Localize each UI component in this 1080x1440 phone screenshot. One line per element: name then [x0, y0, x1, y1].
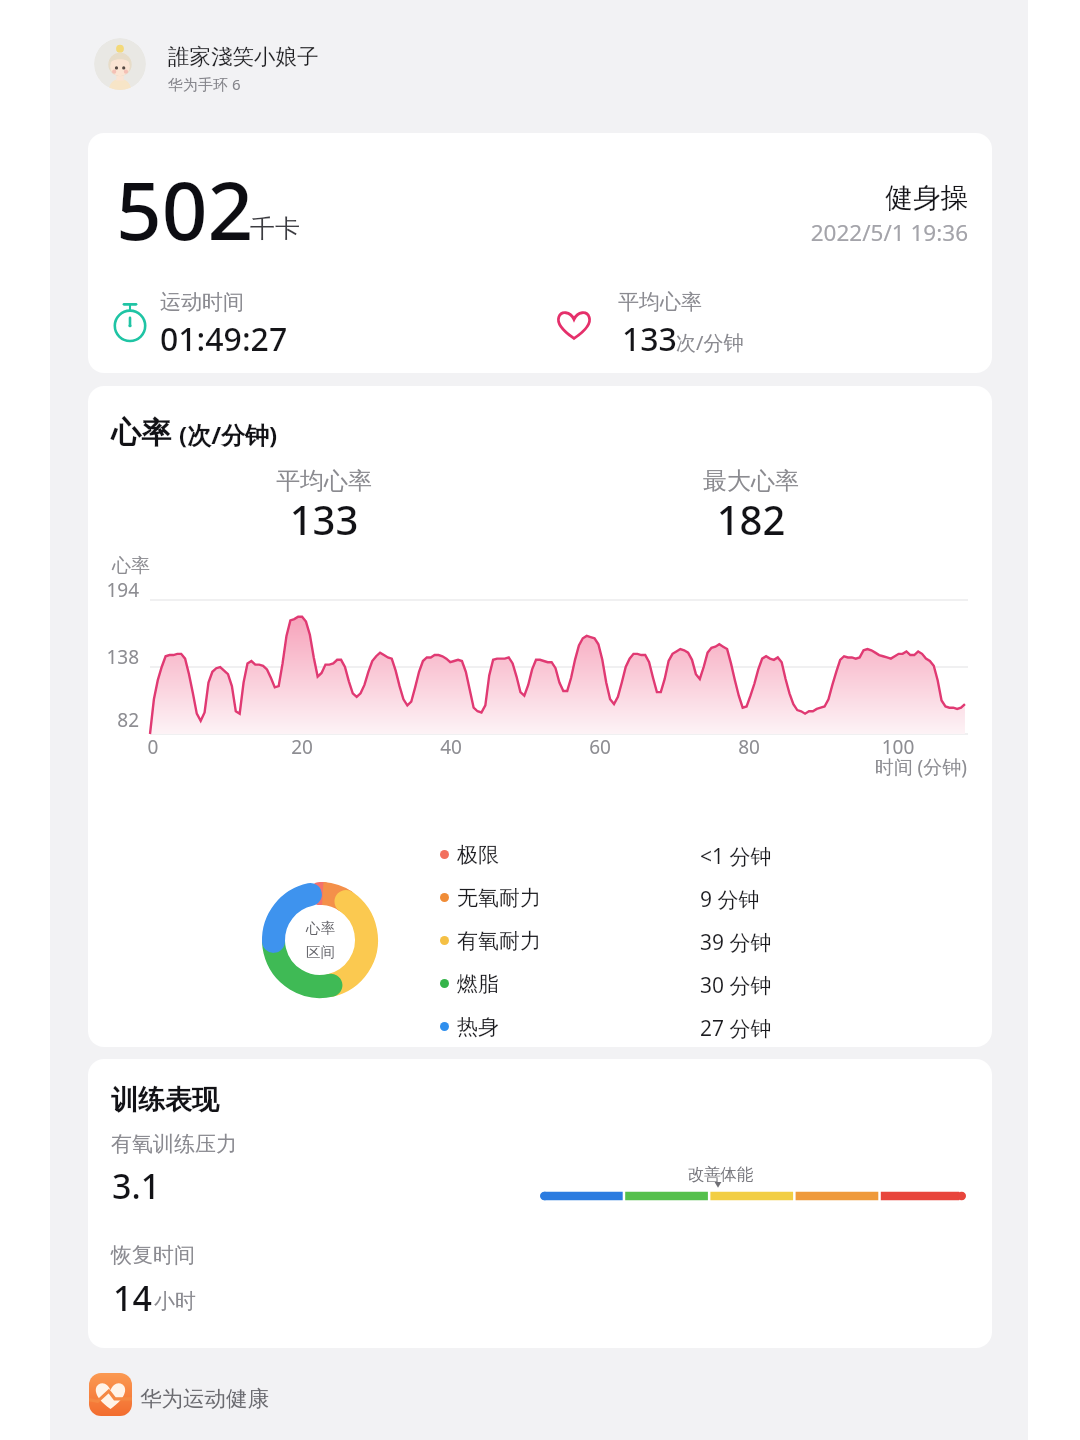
staticText: 194	[88, 577, 139, 603]
staticText: 0	[113, 734, 193, 760]
staticText: 有氧训练压力	[111, 1131, 237, 1157]
staticText: 时间 (分钟)	[767, 754, 967, 780]
staticText: 誰家淺笑小娘子	[168, 43, 319, 70]
staticText: 27 分钟	[700, 1014, 772, 1043]
staticText: 01:49:27	[160, 317, 288, 361]
button[interactable]: 无氧耐力	[433, 876, 913, 918]
staticText: 次/分钟	[676, 329, 744, 356]
staticText: 有氧耐力	[457, 928, 541, 954]
staticText: 3.1	[112, 1163, 161, 1209]
staticText: 平均心率	[618, 289, 702, 315]
staticText: 133	[229, 492, 419, 546]
button[interactable]: 誰家淺笑小娘子	[88, 17, 488, 111]
button[interactable]: 502	[88, 133, 992, 373]
staticText: 心率	[111, 414, 171, 452]
staticText: 30 分钟	[700, 971, 772, 1000]
staticText: 极限	[457, 842, 499, 868]
staticText: 100	[858, 734, 938, 760]
staticText: 热身	[457, 1014, 499, 1040]
staticText: <1 分钟	[700, 842, 772, 871]
button[interactable]: 有氧耐力	[433, 919, 913, 961]
staticText: 14	[113, 1275, 152, 1321]
staticText: 平均心率	[229, 466, 419, 496]
staticText: 恢复时间	[111, 1242, 195, 1268]
staticText: 40	[411, 734, 491, 760]
staticText: 502	[116, 154, 254, 263]
button[interactable]: 训练表现	[88, 1059, 992, 1348]
staticText: 小时	[154, 1288, 196, 1314]
staticText: 千卡	[250, 213, 300, 244]
staticText: (次/分钟)	[179, 418, 278, 451]
staticText: 9 分钟	[700, 885, 760, 914]
staticText: 182	[656, 492, 846, 546]
button[interactable]: 心率	[88, 386, 992, 1047]
staticText: 82	[88, 707, 139, 733]
staticText: 训练表现	[111, 1083, 219, 1117]
staticText: 运动时间	[160, 289, 244, 315]
staticText: 无氧耐力	[457, 885, 541, 911]
button[interactable]: Huawei Health	[89, 1373, 132, 1416]
staticText: 健身操	[488, 181, 968, 216]
button[interactable]: 极限	[433, 833, 913, 875]
staticText: 心率	[112, 554, 150, 578]
staticText: 华为手环 6	[168, 74, 241, 94]
staticText: 区间	[306, 943, 335, 961]
staticText: 最大心率	[656, 466, 846, 496]
staticText: 80	[709, 734, 789, 760]
button[interactable]: 热身	[433, 1005, 913, 1047]
staticText: 39 分钟	[700, 928, 772, 957]
staticText: 改善体能	[628, 1164, 813, 1185]
staticText: 华为运动健康	[140, 1385, 269, 1412]
staticText: 138	[88, 644, 139, 670]
staticText: 60	[560, 734, 640, 760]
staticText: 心率	[306, 919, 335, 937]
staticText: 2022/5/1 19:36	[488, 217, 968, 248]
staticText: 燃脂	[457, 971, 499, 997]
staticText: 133	[622, 317, 677, 361]
button[interactable]: 燃脂	[433, 962, 913, 1004]
staticText: 20	[262, 734, 342, 760]
